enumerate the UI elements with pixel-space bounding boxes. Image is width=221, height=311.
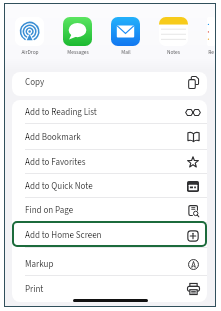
staticText: Notes bbox=[167, 48, 180, 56]
button[interactable]: Messages bbox=[63, 17, 92, 56]
staticText: Mail bbox=[121, 48, 131, 56]
button[interactable]: Add Bookmark bbox=[12, 124, 207, 150]
other: Print bbox=[187, 283, 200, 295]
staticText: Add to Favorites bbox=[25, 156, 86, 169]
other: Add Bookmark bbox=[187, 132, 200, 142]
other: Add to Home Screen bbox=[187, 230, 199, 242]
staticText: Add to Home Screen bbox=[25, 229, 102, 242]
staticText: Add Bookmark bbox=[25, 131, 81, 144]
other: Add to Quick Note bbox=[187, 181, 199, 192]
button[interactable]: Copy bbox=[12, 72, 207, 96]
button[interactable]: Add to Home Screen bbox=[12, 223, 207, 248]
button[interactable]: Add to Quick Note bbox=[12, 174, 207, 198]
staticText: Add to Reading List bbox=[25, 106, 97, 119]
button[interactable]: Find on Page bbox=[12, 198, 207, 223]
button[interactable]: Print bbox=[12, 276, 207, 302]
staticText: AirDrop bbox=[21, 48, 39, 56]
staticText: Messages bbox=[67, 48, 89, 56]
button[interactable]: Notes bbox=[159, 17, 188, 56]
button[interactable]: Mail bbox=[111, 17, 140, 56]
other: Copy bbox=[188, 76, 199, 89]
other: Markup bbox=[188, 259, 199, 270]
staticText: Copy bbox=[25, 76, 45, 89]
other: Find on Page bbox=[188, 205, 199, 217]
other: Add to Reading List bbox=[185, 109, 201, 116]
staticText: Markup bbox=[25, 258, 54, 271]
button[interactable]: Markup bbox=[12, 248, 207, 276]
staticText: Re bbox=[208, 48, 214, 56]
other: Add to Favorites bbox=[187, 156, 199, 168]
button[interactable]: Add to Reading List bbox=[12, 100, 207, 124]
button[interactable]: Add to Favorites bbox=[12, 150, 207, 174]
staticText: Print bbox=[25, 283, 44, 296]
staticText: Find on Page bbox=[25, 204, 74, 217]
staticText: Add to Quick Note bbox=[25, 180, 93, 193]
button[interactable]: Re bbox=[207, 17, 215, 56]
button[interactable]: AirDrop bbox=[15, 17, 44, 56]
